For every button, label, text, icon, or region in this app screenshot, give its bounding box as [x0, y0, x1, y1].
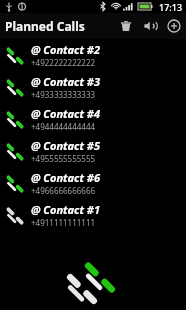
staticText: +4933333333333: [31, 89, 96, 100]
button[interactable]: @ Contact #5: [0, 135, 186, 167]
button[interactable]: @ Contact #6: [0, 167, 186, 199]
staticText: @ Contact #2: [31, 42, 100, 57]
staticText: +4911111111111: [31, 217, 96, 228]
staticText: @ Contact #3: [31, 74, 100, 89]
button[interactable]: Add: [162, 14, 186, 38]
button[interactable]: @ Contact #4: [0, 103, 186, 135]
staticText: @ Contact #5: [31, 138, 100, 153]
button[interactable]: Delete: [114, 14, 138, 38]
button[interactable]: @ Contact #3: [0, 71, 186, 103]
staticText: @ Contact #6: [31, 170, 100, 185]
staticText: +4966666666666: [31, 185, 96, 196]
staticText: @ Contact #4: [31, 106, 100, 121]
button[interactable]: Sound: [138, 14, 162, 38]
staticText: @ Contact #1: [31, 202, 100, 217]
button[interactable]: @ Contact #2: [0, 39, 186, 71]
button[interactable]: @ Contact #1: [0, 199, 186, 231]
staticText: Planned Calls: [5, 18, 85, 34]
staticText: +4922222222222: [31, 57, 96, 68]
staticText: +4944444444444: [31, 121, 96, 132]
staticText: 17:13: [159, 1, 183, 13]
staticText: +4955555555555: [31, 153, 96, 164]
